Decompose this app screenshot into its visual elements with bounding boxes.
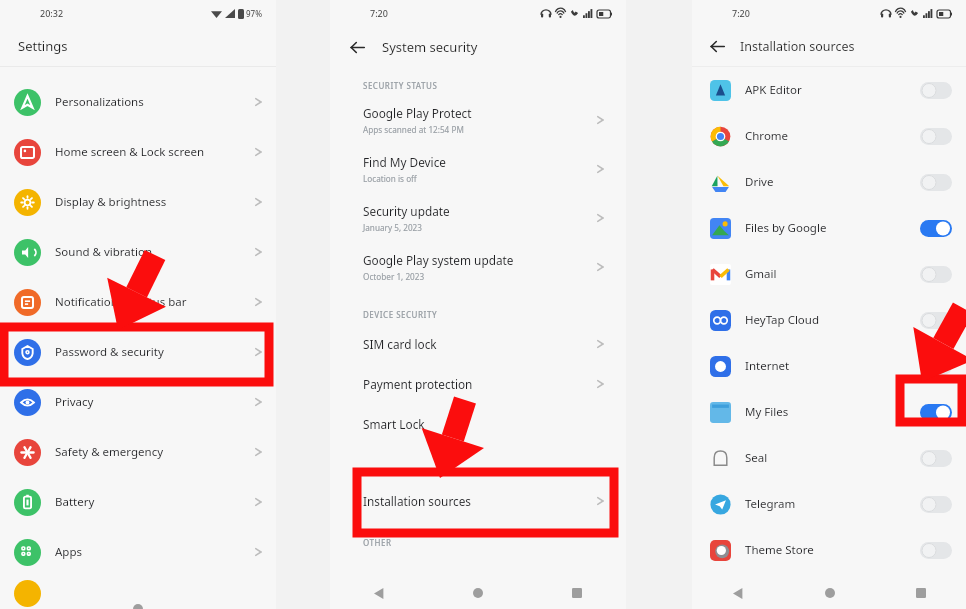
button[interactable]: Home screen & Lock screen bbox=[0, 127, 276, 177]
button[interactable]: Back bbox=[344, 34, 370, 60]
button[interactable]: My Files bbox=[692, 389, 966, 435]
staticText: Telegram bbox=[745, 496, 796, 512]
button[interactable]: APK Editor bbox=[692, 67, 966, 113]
button[interactable]: Google Play system update bbox=[330, 242, 626, 291]
button[interactable]: Notification & status bar bbox=[0, 277, 276, 327]
staticText: 20:32 bbox=[40, 7, 64, 19]
button[interactable]: Disabled bbox=[920, 312, 952, 329]
button[interactable]: Back bbox=[692, 577, 784, 609]
staticText: Find My Device bbox=[363, 154, 446, 170]
staticText: APK Editor bbox=[745, 82, 802, 98]
staticText: January 5, 2023 bbox=[363, 222, 422, 233]
button[interactable]: Password & security bbox=[0, 327, 276, 377]
button[interactable]: Safety & emergency bbox=[0, 427, 276, 477]
button[interactable]: Back bbox=[704, 33, 730, 59]
staticText: Location is off bbox=[363, 173, 417, 184]
button[interactable]: Disabled bbox=[920, 128, 952, 145]
button[interactable]: Disabled bbox=[920, 358, 952, 375]
staticText: My Files bbox=[745, 404, 789, 420]
staticText: System security bbox=[382, 38, 478, 56]
button[interactable]: Home bbox=[784, 577, 875, 609]
button[interactable]: HeyTap Cloud bbox=[692, 297, 966, 343]
staticText: Drive bbox=[745, 174, 774, 190]
staticText: Safety & emergency bbox=[55, 444, 164, 460]
staticText: Password & security bbox=[55, 344, 164, 360]
staticText: OTHER bbox=[363, 537, 392, 548]
button[interactable]: Display & brightness bbox=[0, 177, 276, 227]
button[interactable]: Chrome bbox=[692, 113, 966, 159]
staticText: Google Play system update bbox=[363, 252, 514, 268]
staticText: Google Play Protect bbox=[363, 105, 472, 121]
staticText: Theme Store bbox=[745, 542, 814, 558]
staticText: Privacy bbox=[55, 394, 94, 410]
staticText: 7:20 bbox=[370, 7, 388, 19]
staticText: 97% bbox=[246, 8, 262, 19]
button[interactable]: Disabled bbox=[920, 450, 952, 467]
button[interactable]: Disabled bbox=[920, 542, 952, 559]
staticText: Home screen & Lock screen bbox=[55, 144, 204, 160]
staticText: Apps bbox=[55, 544, 83, 560]
button[interactable]: Files by Google bbox=[692, 205, 966, 251]
button[interactable]: Sound & vibration bbox=[0, 227, 276, 277]
button[interactable]: Theme Store bbox=[692, 527, 966, 573]
staticText: 7:20 bbox=[732, 7, 750, 19]
staticText: DEVICE SECURITY bbox=[363, 309, 438, 320]
staticText: Internet bbox=[745, 358, 790, 374]
button[interactable]: Personalizations bbox=[0, 77, 276, 127]
button[interactable]: Disabled bbox=[920, 266, 952, 283]
button[interactable]: Recents bbox=[527, 577, 626, 609]
button[interactable]: Gmail bbox=[692, 251, 966, 297]
button[interactable]: Recents bbox=[875, 577, 966, 609]
button[interactable]: Battery bbox=[0, 477, 276, 527]
button[interactable]: Security update bbox=[330, 193, 626, 242]
staticText: Gmail bbox=[745, 266, 777, 282]
button[interactable]: Telegram bbox=[692, 481, 966, 527]
button[interactable]: Drive bbox=[692, 159, 966, 205]
button[interactable]: Internet bbox=[692, 343, 966, 389]
button[interactable]: Google Play Protect bbox=[330, 95, 626, 144]
staticText: Settings bbox=[18, 37, 68, 55]
staticText: SECURITY STATUS bbox=[363, 80, 438, 91]
button[interactable]: Payment protection bbox=[330, 364, 626, 404]
staticText: APP INSTALLATION bbox=[363, 466, 444, 477]
button[interactable]: Home bbox=[428, 577, 527, 609]
button[interactable]: Enabled bbox=[920, 404, 952, 421]
button[interactable]: Disabled bbox=[920, 174, 952, 191]
staticText: Files by Google bbox=[745, 220, 827, 236]
button[interactable] bbox=[0, 577, 276, 609]
button[interactable]: Enabled bbox=[920, 220, 952, 237]
staticText: HeyTap Cloud bbox=[745, 312, 820, 328]
button[interactable]: SIM card lock bbox=[330, 324, 626, 364]
button[interactable]: Installation sources bbox=[330, 481, 626, 521]
staticText: Security update bbox=[363, 203, 450, 219]
staticText: Payment protection bbox=[363, 376, 473, 392]
button[interactable]: Disabled bbox=[920, 496, 952, 513]
staticText: Personalizations bbox=[55, 94, 144, 110]
button[interactable]: Apps bbox=[0, 527, 276, 577]
button[interactable]: Disabled bbox=[920, 82, 952, 99]
button[interactable]: Find My Device bbox=[330, 144, 626, 193]
button[interactable]: Privacy bbox=[0, 377, 276, 427]
button[interactable]: Seal bbox=[692, 435, 966, 481]
staticText: Chrome bbox=[745, 128, 789, 144]
staticText: Apps scanned at 12:54 PM bbox=[363, 124, 464, 135]
staticText: Installation sources bbox=[740, 38, 855, 55]
button[interactable]: Back bbox=[330, 577, 428, 609]
button[interactable]: Smart Lock bbox=[330, 404, 626, 444]
staticText: Smart Lock bbox=[363, 416, 425, 432]
staticText: SIM card lock bbox=[363, 336, 437, 352]
staticText: Installation sources bbox=[363, 493, 472, 509]
staticText: Sound & vibration bbox=[55, 244, 152, 260]
staticText: October 1, 2023 bbox=[363, 271, 425, 282]
staticText: Notification & status bar bbox=[55, 294, 187, 310]
staticText: Display & brightness bbox=[55, 194, 167, 210]
staticText: Seal bbox=[745, 450, 768, 466]
staticText: Battery bbox=[55, 494, 95, 510]
